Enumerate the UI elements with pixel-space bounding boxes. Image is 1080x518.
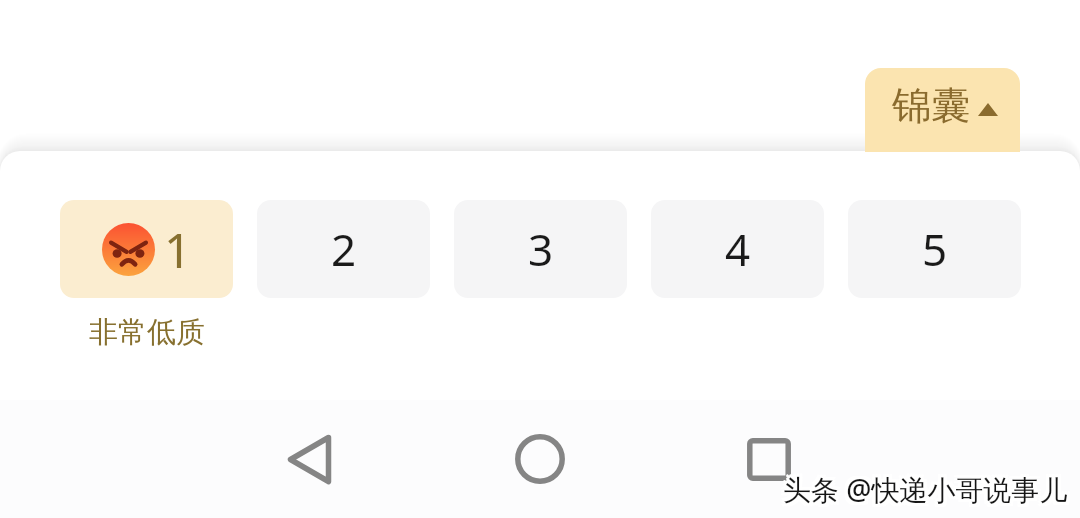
button[interactable]: 2 [257, 200, 430, 298]
staticText: 头条 @快递小哥说事儿 [786, 467, 1071, 505]
staticText: 头条 @快递小哥说事儿 [780, 467, 1065, 505]
button[interactable]: 锦囊 [865, 68, 1020, 152]
staticText: 头条 @快递小哥说事儿 [783, 467, 1068, 505]
staticText: 3 [528, 219, 554, 279]
staticText: 5 [922, 219, 948, 279]
staticText: 头条 @快递小哥说事儿 [783, 470, 1068, 508]
staticText: 4 [725, 219, 751, 279]
button[interactable]: 5 [848, 200, 1021, 298]
button[interactable]: 3 [454, 200, 627, 298]
staticText: 头条 @快递小哥说事儿 [786, 473, 1071, 511]
button[interactable]: 4 [651, 200, 824, 298]
button[interactable]: Recent apps [728, 418, 810, 500]
staticText: 1 [164, 217, 192, 282]
staticText: 2 [331, 219, 357, 279]
staticText: 锦囊 [892, 81, 970, 130]
staticText: 头条 @快递小哥说事儿 [786, 470, 1071, 508]
staticText: 头条 @快递小哥说事儿 [780, 473, 1065, 511]
button[interactable]: Back [268, 418, 350, 500]
button[interactable]: Home [499, 418, 581, 500]
button[interactable]: 1 [60, 200, 233, 298]
staticText: 非常低质 [89, 314, 205, 351]
staticText: 头条 @快递小哥说事儿 [783, 473, 1068, 511]
staticText: 头条 @快递小哥说事儿 [780, 470, 1065, 508]
